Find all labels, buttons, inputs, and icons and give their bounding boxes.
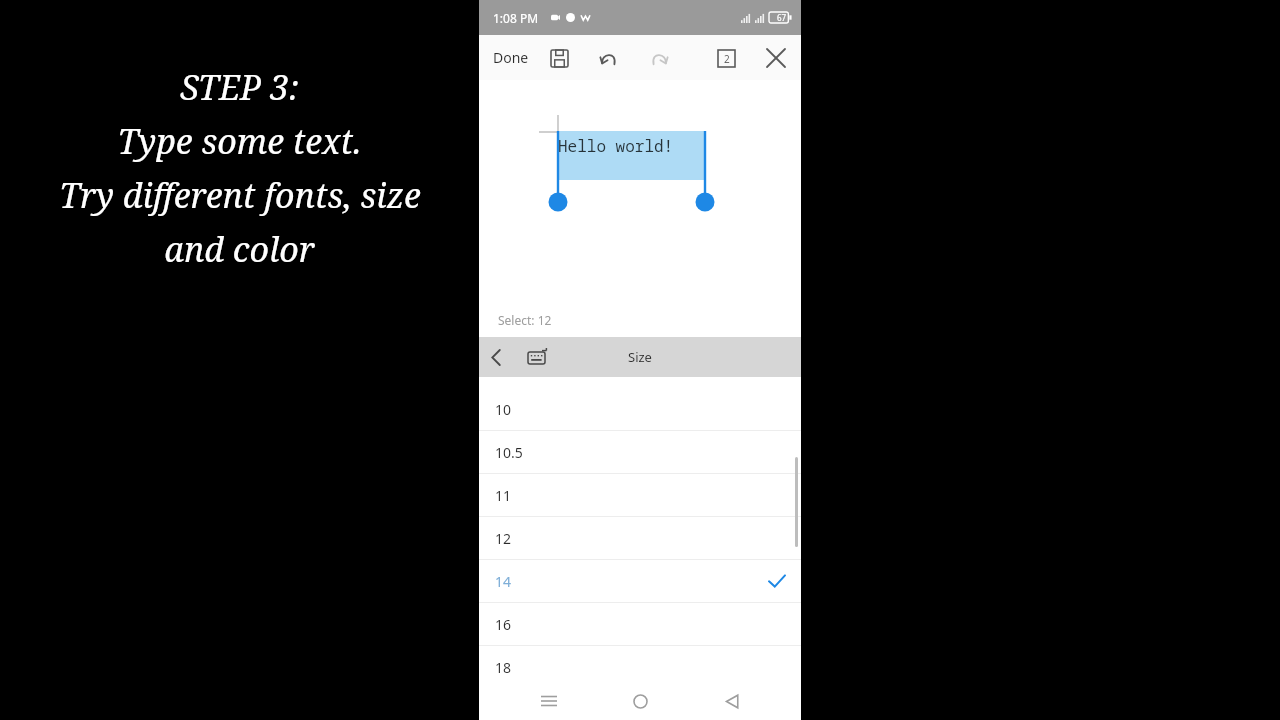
staticText: 18	[495, 658, 512, 677]
staticText: and color	[164, 226, 315, 272]
staticText: Hello world!	[558, 135, 674, 157]
staticText: 16	[495, 615, 512, 634]
button[interactable]: Done	[479, 40, 543, 75]
staticText: Done	[493, 48, 529, 67]
button[interactable]: 14	[479, 560, 801, 603]
button[interactable]: Back	[710, 682, 754, 720]
button[interactable]: Back	[479, 340, 513, 374]
button[interactable]: Close	[761, 43, 791, 73]
button[interactable]: Undo	[594, 43, 624, 73]
button[interactable]: Pages	[711, 43, 741, 73]
staticText: Try different fonts, size	[59, 172, 421, 218]
staticText: 11	[495, 486, 512, 505]
button[interactable]: 10.5	[479, 431, 801, 474]
staticText: 10.5	[495, 443, 523, 462]
button[interactable]: Recents	[527, 682, 571, 720]
button[interactable]: Home	[618, 682, 662, 720]
staticText: 1:08 PM	[493, 10, 539, 26]
staticText: 2	[724, 52, 730, 66]
staticText: 14	[495, 572, 512, 591]
button[interactable]: 12	[479, 517, 801, 560]
button[interactable]: 16	[479, 603, 801, 646]
staticText: Type some text.	[117, 118, 362, 164]
staticText: STEP 3:	[180, 64, 299, 110]
button[interactable]: 18	[479, 646, 801, 689]
staticText: 10	[495, 400, 512, 419]
button[interactable]: Save	[544, 43, 574, 73]
button[interactable]: Redo	[644, 43, 674, 73]
button[interactable]: Hide keyboard	[521, 340, 555, 374]
staticText: Size	[628, 348, 652, 366]
button[interactable]: 10	[479, 388, 801, 431]
staticText: 12	[495, 529, 512, 548]
staticText: 67	[777, 12, 787, 23]
button[interactable]: 11	[479, 474, 801, 517]
staticText: Select: 12	[498, 312, 552, 328]
